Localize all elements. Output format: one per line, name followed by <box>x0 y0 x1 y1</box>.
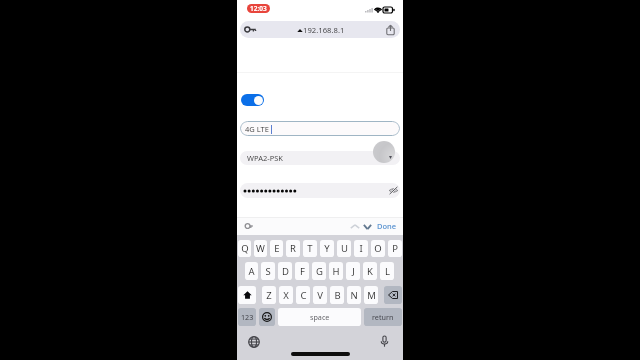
button[interactable]: K <box>363 262 377 280</box>
staticText: G <box>316 265 323 278</box>
button[interactable]: T <box>303 240 317 257</box>
staticText: D <box>282 265 289 278</box>
other: Share <box>386 24 395 35</box>
staticText: S <box>265 265 271 278</box>
button[interactable]: Next field <box>361 220 374 233</box>
button[interactable]: H <box>329 262 343 280</box>
button[interactable]: Emoji <box>259 308 275 326</box>
button[interactable]: F <box>295 262 309 280</box>
button[interactable]: Z <box>262 286 276 304</box>
button[interactable]: Y <box>320 240 334 257</box>
button[interactable]: U <box>337 240 351 257</box>
staticText: 12:03 <box>250 4 267 13</box>
other: Site information <box>244 26 257 33</box>
staticText: Done <box>377 221 397 231</box>
staticText: I <box>359 242 363 255</box>
staticText: 192.168.8.1 <box>303 25 345 35</box>
staticText: J <box>352 265 355 278</box>
button[interactable]: M <box>364 286 378 304</box>
staticText: T <box>307 242 313 255</box>
staticText: N <box>350 289 358 302</box>
button[interactable]: I <box>354 240 368 257</box>
staticText: K <box>367 265 373 278</box>
button[interactable]: C <box>296 286 310 304</box>
staticText: L <box>385 265 390 278</box>
staticText: P <box>392 242 398 255</box>
staticText: V <box>317 289 323 302</box>
staticText: WPA2-PSK <box>247 153 283 163</box>
button[interactable]: W <box>254 240 267 257</box>
button[interactable]: A <box>245 262 258 280</box>
staticText: W <box>256 242 265 255</box>
staticText: Q <box>241 242 249 255</box>
button[interactable]: 4G LTE <box>240 121 400 136</box>
staticText: A <box>248 265 255 278</box>
staticText: Z <box>266 289 272 302</box>
staticText: U <box>341 242 348 255</box>
button[interactable]: L <box>380 262 394 280</box>
button[interactable]: Wi-Fi enabled <box>241 94 264 106</box>
staticText: 4G LTE <box>245 124 269 134</box>
button[interactable]: V <box>313 286 327 304</box>
button[interactable]: J <box>346 262 360 280</box>
staticText: M <box>367 289 376 302</box>
staticText: O <box>374 242 382 255</box>
button[interactable]: D <box>278 262 292 280</box>
staticText: C <box>300 289 307 302</box>
button[interactable]: 123 <box>238 308 256 326</box>
button[interactable]: Done <box>376 218 398 234</box>
staticText: X <box>283 289 289 302</box>
button[interactable]: return <box>364 308 402 326</box>
button[interactable]: Site information <box>240 21 400 38</box>
button[interactable]: Q <box>238 240 251 257</box>
staticText: F <box>300 265 305 278</box>
staticText: R <box>290 242 296 255</box>
button[interactable]: N <box>347 286 361 304</box>
button[interactable]: R <box>286 240 300 257</box>
button[interactable]: Show password <box>240 183 400 198</box>
button[interactable]: X <box>279 286 293 304</box>
staticText: B <box>334 289 341 302</box>
button[interactable]: B <box>330 286 344 304</box>
staticText: return <box>372 312 394 322</box>
staticText: H <box>332 265 340 278</box>
staticText: Y <box>324 242 330 255</box>
button[interactable]: space <box>278 308 361 326</box>
button[interactable]: S <box>261 262 275 280</box>
button[interactable]: G <box>312 262 326 280</box>
staticText: 123 <box>241 312 254 322</box>
other: Switch keyboard <box>248 336 260 348</box>
staticText: E <box>274 242 280 255</box>
button[interactable]: Previous field <box>348 220 361 233</box>
button[interactable]: Shift <box>238 286 256 304</box>
button[interactable]: O <box>371 240 385 257</box>
button[interactable]: P <box>388 240 402 257</box>
other: Dictate <box>380 335 389 348</box>
button[interactable]: E <box>270 240 283 257</box>
button[interactable]: Backspace <box>384 286 402 304</box>
staticText: space <box>310 312 330 322</box>
other: Show password <box>388 186 399 195</box>
other: Passwords <box>244 222 254 230</box>
button[interactable]: WPA2-PSK <box>240 151 400 165</box>
